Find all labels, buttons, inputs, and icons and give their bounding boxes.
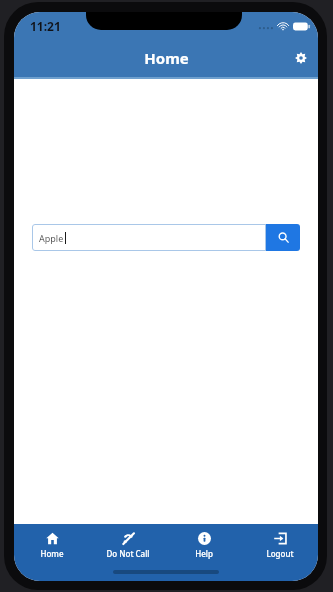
- button[interactable]: Search: [266, 224, 300, 251]
- button[interactable]: Do Not Call: [90, 524, 166, 566]
- staticText: Apple: [39, 232, 64, 244]
- staticText: Logout: [266, 548, 294, 559]
- staticText: 11:21: [30, 18, 61, 34]
- button[interactable]: Logout: [242, 524, 318, 566]
- staticText: Home: [144, 48, 189, 68]
- button[interactable]: Settings: [284, 41, 318, 75]
- staticText: Home: [40, 548, 64, 559]
- button[interactable]: Apple: [32, 224, 266, 251]
- button[interactable]: Home: [14, 524, 90, 566]
- staticText: Do Not Call: [106, 548, 150, 559]
- staticText: Help: [195, 548, 213, 559]
- button[interactable]: Help: [166, 524, 242, 566]
